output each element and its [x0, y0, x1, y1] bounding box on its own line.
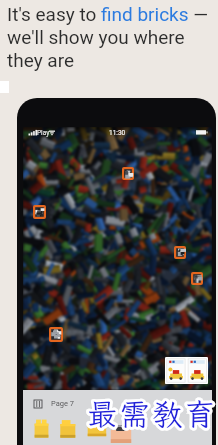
button[interactable]: Detected brick [33, 205, 46, 219]
button[interactable]: Detected brick [174, 246, 186, 259]
button[interactable]: Detected brick [49, 327, 63, 342]
staticText: Page 7 [51, 399, 75, 408]
button[interactable]: Detected brick [191, 272, 203, 285]
staticText: 11:30 [109, 129, 126, 137]
staticText: 最需教育 [87, 394, 218, 434]
button[interactable]: Building instructions [165, 357, 208, 384]
staticText: It's easy to find bricks — we'll show yo… [7, 3, 215, 72]
staticText: Play [37, 129, 50, 137]
button[interactable]: Detected brick [122, 167, 134, 180]
staticText: 最需教育 [87, 394, 218, 434]
button[interactable]: Page 7 [34, 399, 66, 408]
